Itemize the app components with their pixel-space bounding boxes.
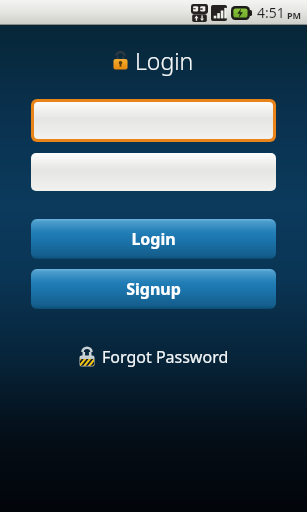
button[interactable]: Login [31,219,276,259]
staticText: Forgot Password [102,346,229,368]
staticText: Signup [126,278,181,300]
button[interactable]: Signup [31,269,276,309]
button[interactable]: Forgot Password [74,343,234,371]
staticText: Login [131,228,176,250]
staticText: PM [287,9,302,21]
button[interactable]: Password field [31,153,276,191]
staticText: 4:51 [257,3,285,22]
staticText: Login [135,45,194,76]
button[interactable]: Username field [31,99,276,142]
